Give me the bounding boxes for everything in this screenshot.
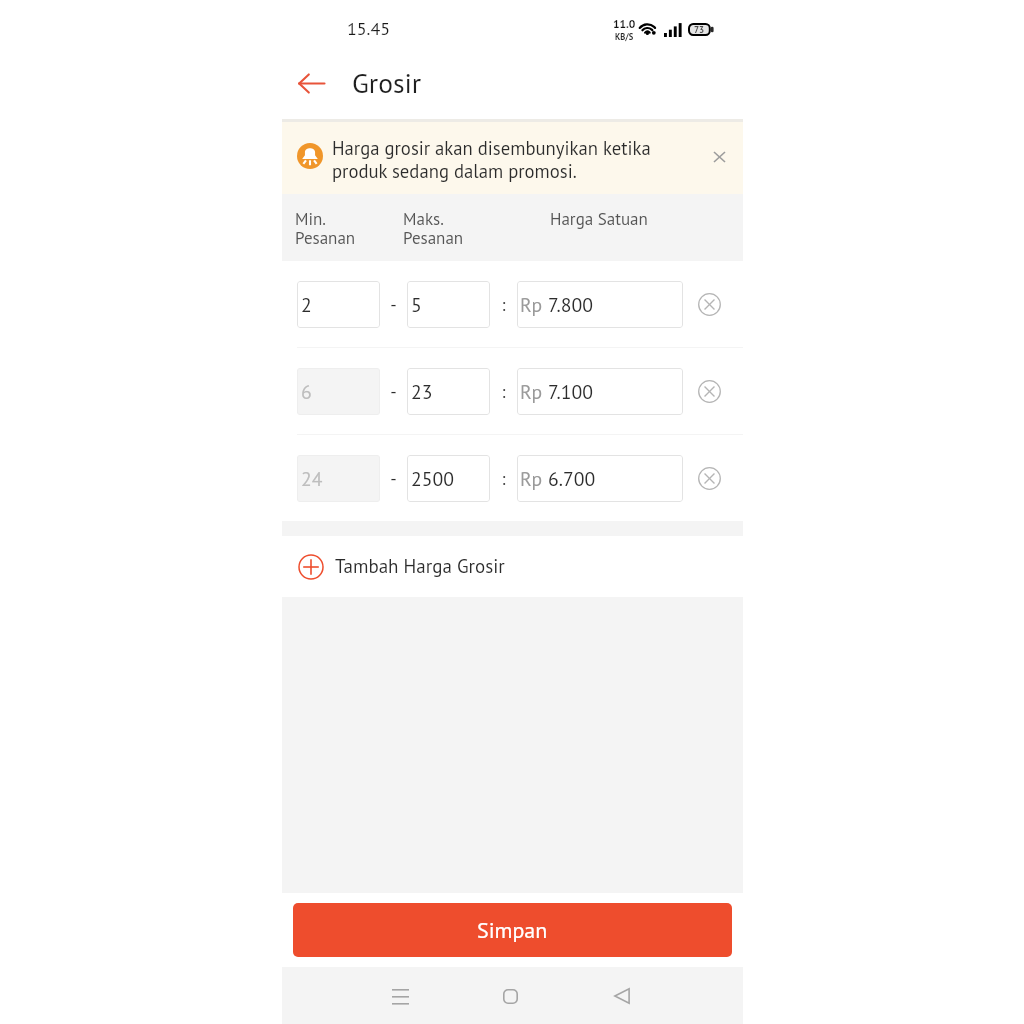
staticText: Tambah Harga Grosir	[335, 554, 505, 579]
staticText: 11.0	[613, 16, 636, 31]
button[interactable]: 6	[297, 368, 380, 415]
button[interactable]: Back	[600, 974, 644, 1018]
button[interactable]: Close	[700, 139, 736, 175]
button[interactable]: 5	[407, 281, 490, 328]
staticText: :	[490, 293, 517, 316]
staticText: 73	[694, 24, 705, 36]
staticText: Min. Pesanan	[295, 208, 356, 248]
staticText: Rp	[520, 379, 548, 404]
staticText: 7.800	[548, 292, 593, 317]
staticText: 6	[301, 379, 312, 404]
button[interactable]: Simpan	[293, 903, 732, 957]
button[interactable]: Delete row	[686, 455, 732, 501]
button[interactable]: Rp	[517, 368, 683, 415]
staticText: 7.100	[548, 379, 593, 404]
button[interactable]: Recent apps	[378, 974, 422, 1018]
button[interactable]: 23	[407, 368, 490, 415]
staticText: Grosir	[352, 65, 422, 101]
staticText: 5	[411, 292, 422, 317]
button[interactable]: Delete row	[686, 368, 732, 414]
staticText: Rp	[520, 466, 548, 491]
button[interactable]: Rp	[517, 281, 683, 328]
staticText: 15.45	[347, 17, 391, 40]
button[interactable]: Rp	[517, 455, 683, 502]
staticText: 2	[301, 292, 312, 317]
button[interactable]: Home	[488, 974, 532, 1018]
staticText: :	[490, 467, 517, 490]
staticText: Harga grosir akan disembunyikan ketika p…	[332, 136, 651, 184]
staticText: :	[490, 380, 517, 403]
staticText: -	[380, 293, 407, 316]
button[interactable]: Back	[289, 61, 333, 105]
staticText: 23	[411, 379, 433, 404]
staticText: Maks. Pesanan	[403, 208, 464, 248]
staticText: -	[380, 467, 407, 490]
button[interactable]: Delete row	[686, 281, 732, 327]
button[interactable]: 24	[297, 455, 380, 502]
staticText: Simpan	[477, 916, 548, 944]
button[interactable]: 2500	[407, 455, 490, 502]
staticText: Rp	[520, 292, 548, 317]
button[interactable]: Tambah Harga Grosir	[282, 536, 743, 597]
staticText: 6.700	[548, 466, 596, 491]
staticText: Harga Satuan	[550, 208, 648, 230]
staticText: 24	[301, 466, 323, 491]
staticText: -	[380, 380, 407, 403]
staticText: 2500	[411, 466, 454, 491]
staticText: KB/S	[615, 31, 634, 42]
button[interactable]: 2	[297, 281, 380, 328]
